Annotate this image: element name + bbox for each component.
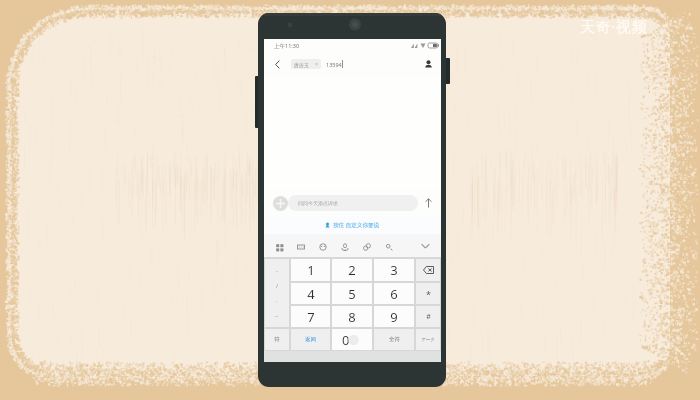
button[interactable]: Contacts: [422, 55, 435, 73]
button[interactable]: 9: [374, 306, 414, 327]
staticText: 9: [390, 308, 398, 326]
staticText: 按住 自定义你要说: [333, 221, 380, 229]
staticText: 0: [342, 331, 350, 349]
button[interactable]: 唐吉玉: [291, 59, 321, 69]
button[interactable]: 全符: [374, 329, 414, 350]
staticText: 上午11:30: [274, 42, 300, 50]
button[interactable]: 返回: [291, 329, 330, 350]
staticText: 问问今天添点诉求: [298, 200, 338, 206]
button[interactable]: 0: [332, 329, 372, 350]
button[interactable]: Back: [270, 55, 284, 73]
staticText: 5: [348, 285, 356, 303]
staticText: 全符: [389, 336, 400, 343]
staticText: アーク: [421, 337, 435, 343]
button[interactable]: Send: [418, 194, 438, 212]
staticText: /: [276, 282, 279, 289]
staticText: 8: [348, 308, 356, 326]
button[interactable]: Emoji: [312, 234, 334, 257]
staticText: 返回: [305, 336, 316, 343]
button[interactable]: Backspace: [416, 259, 440, 281]
button[interactable]: *: [416, 283, 440, 304]
button[interactable]: Keyboard: [290, 234, 312, 257]
button[interactable]: 3: [374, 259, 414, 281]
button[interactable]: Hide keyboard: [417, 234, 433, 257]
staticText: ×: [315, 61, 318, 68]
staticText: ·: [276, 297, 278, 304]
staticText: 唐吉玉: [294, 62, 309, 68]
staticText: ~: [275, 312, 279, 319]
staticText: 7: [307, 308, 315, 326]
button[interactable]: 13594: [326, 60, 422, 68]
staticText: 13594: [326, 61, 342, 68]
button[interactable]: Search: [378, 234, 400, 257]
button[interactable]: 5: [332, 283, 372, 304]
button[interactable]: 4: [291, 283, 330, 304]
button[interactable]: 2: [332, 259, 372, 281]
button[interactable]: Apps: [268, 234, 290, 257]
button[interactable]: 8: [332, 306, 372, 327]
staticText: 2: [348, 261, 356, 279]
button[interactable]: 1: [291, 259, 330, 281]
staticText: *: [426, 288, 431, 300]
button[interactable]: Clipboard: [356, 234, 378, 257]
button[interactable]: Add: [273, 196, 288, 211]
button[interactable]: Voice: [334, 234, 356, 257]
staticText: 天奇·视频: [580, 16, 648, 36]
staticText: 6: [390, 285, 398, 303]
button[interactable]: #: [416, 306, 440, 327]
staticText: 4: [307, 285, 315, 303]
staticText: 符: [274, 336, 280, 343]
staticText: 3: [390, 261, 398, 279]
button[interactable]: 符: [265, 329, 289, 350]
staticText: 1: [307, 261, 315, 279]
button[interactable]: 问问今天添点诉求: [288, 195, 418, 211]
button[interactable]: 6: [374, 283, 414, 304]
staticText: -: [276, 267, 278, 274]
staticText: #: [426, 312, 431, 322]
button[interactable]: 7: [291, 306, 330, 327]
button[interactable]: アーク: [416, 329, 440, 350]
